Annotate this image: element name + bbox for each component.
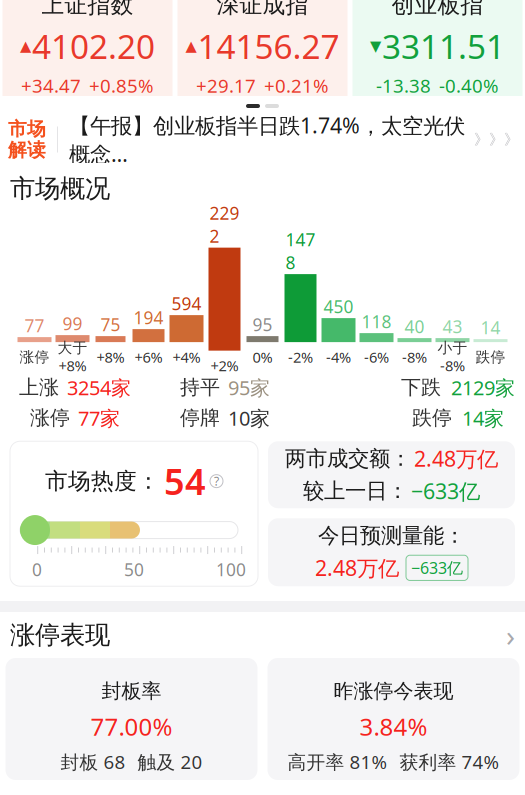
staticText: 3.84% <box>359 710 427 742</box>
staticText: 触及 20 <box>137 749 202 774</box>
button[interactable]: 深证成指 <box>177 0 347 96</box>
staticText: 下跌 <box>401 375 441 400</box>
staticText: 2.48万亿 <box>315 554 399 582</box>
staticText: › <box>506 615 515 654</box>
button[interactable]: 两市成交额： <box>268 441 515 508</box>
staticText: +29.17 <box>196 73 256 98</box>
staticText: 小于 <box>437 339 467 357</box>
staticText: 解读 <box>8 138 46 161</box>
button[interactable]: 封板率 <box>5 658 257 780</box>
staticText: ▼ <box>370 38 381 54</box>
staticText: 大于 <box>57 339 87 357</box>
staticText: 54 <box>164 457 206 505</box>
button[interactable]: 市场 <box>0 116 525 163</box>
button[interactable]: 市场热度： <box>10 441 258 586</box>
staticText: 118 <box>361 310 391 333</box>
staticText: -8% <box>402 347 427 367</box>
staticText: 194 <box>133 306 163 329</box>
staticText: 【午报】创业板指半日跌1.74%，太空光伏概念… <box>69 111 465 168</box>
staticText: 涨停 <box>30 406 70 430</box>
staticText: 450 <box>323 295 353 318</box>
staticText: 14家 <box>462 405 504 431</box>
staticText: -8% <box>440 356 465 375</box>
staticText: 较上一日： <box>303 478 408 504</box>
staticText: 昨涨停今表现 <box>333 679 453 703</box>
staticText: 今日预测量能： <box>318 522 465 549</box>
staticText: 14156.27 <box>197 24 339 68</box>
staticText: 95 <box>252 313 272 336</box>
staticText: 上涨 <box>19 375 59 400</box>
staticText: 高开率 81% <box>287 749 387 774</box>
staticText: -2% <box>288 347 313 367</box>
staticText: 77.00% <box>90 710 172 742</box>
staticText: 停牌 <box>180 406 220 430</box>
staticText: 3311.51 <box>382 24 505 68</box>
staticText: +6% <box>134 347 162 367</box>
staticText: -4% <box>326 347 351 367</box>
staticText: 封板率 <box>101 679 161 703</box>
staticText: 3254家 <box>67 374 131 401</box>
staticText: 两市成交额： <box>285 445 411 472</box>
staticText: 43 <box>442 315 462 338</box>
staticText: +4% <box>172 347 200 367</box>
staticText: 95家 <box>228 374 270 401</box>
staticText: 跌停 <box>475 348 505 366</box>
staticText: 持平 <box>180 375 220 400</box>
staticText: 市场概况 <box>10 173 110 204</box>
staticText: −633亿 <box>411 477 480 505</box>
button[interactable]: 涨停表现 <box>0 612 525 658</box>
staticText: 14 <box>480 316 500 339</box>
staticText: 50 <box>124 558 144 581</box>
staticText: ▲ <box>20 38 31 54</box>
staticText: 获利率 74% <box>399 749 499 774</box>
staticText: 77 <box>24 314 44 337</box>
button[interactable]: 创业板指 <box>352 0 522 96</box>
button[interactable]: 昨涨停今表现 <box>267 658 519 780</box>
staticText: 100 <box>216 558 246 581</box>
staticText: 1478 <box>285 228 315 274</box>
staticText: 涨停 <box>19 348 49 366</box>
staticText: 77家 <box>78 405 120 431</box>
staticText: 市场 <box>8 118 46 140</box>
staticText: -13.38 <box>376 73 431 98</box>
staticText: 2292 <box>209 202 239 248</box>
staticText: 封板 68 <box>60 749 125 774</box>
staticText: 深证成指 <box>216 0 308 19</box>
button[interactable]: 上证指数 <box>2 0 172 96</box>
staticText: 10家 <box>228 405 270 431</box>
staticText: +8% <box>58 356 86 375</box>
staticText: 0 <box>32 558 42 581</box>
staticText: +8% <box>96 347 124 367</box>
staticText: +34.47 <box>21 73 81 98</box>
staticText: ▲ <box>185 38 196 54</box>
staticText: 594 <box>171 292 201 315</box>
button[interactable]: 今日预测量能： <box>268 518 515 586</box>
staticText: 40 <box>404 315 424 338</box>
staticText: 创业板指 <box>391 0 483 19</box>
staticText: 75 <box>100 313 120 336</box>
staticText: 0% <box>252 347 272 367</box>
staticText: 2129家 <box>451 374 515 401</box>
staticText: 市场热度： <box>45 467 160 495</box>
staticText: 跌停 <box>412 406 452 430</box>
staticText: 》》》 <box>474 130 519 148</box>
staticText: −633亿 <box>411 557 463 578</box>
staticText: 上证指数 <box>41 0 133 19</box>
staticText: 2.48万亿 <box>414 444 498 473</box>
staticText: 99 <box>62 312 82 335</box>
staticText: ? <box>214 473 219 489</box>
staticText: +2% <box>210 356 238 375</box>
staticText: -0.40% <box>439 73 499 98</box>
staticText: +0.85% <box>89 73 154 98</box>
staticText: 涨停表现 <box>10 619 110 650</box>
staticText: -6% <box>364 347 389 367</box>
staticText: +0.21% <box>264 73 329 98</box>
staticText: 4102.20 <box>32 24 155 68</box>
